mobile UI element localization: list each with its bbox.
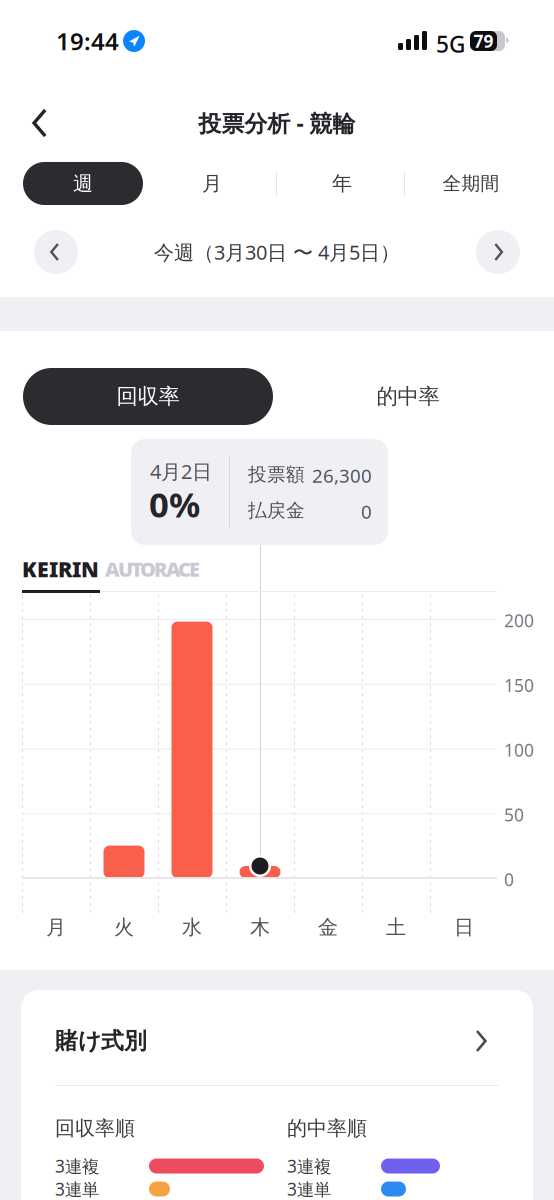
staticText: 週 bbox=[73, 171, 93, 196]
staticText: 0% bbox=[149, 481, 200, 527]
staticText: 79 bbox=[473, 29, 493, 52]
staticText: 賭け式別 bbox=[55, 1027, 147, 1055]
staticText: 回収率順 bbox=[55, 1116, 135, 1141]
staticText: 200 bbox=[504, 609, 534, 632]
button[interactable]: Back bbox=[16, 99, 64, 147]
staticText: 0 bbox=[361, 499, 372, 524]
staticText: 100 bbox=[504, 738, 534, 761]
staticText: 3連単 bbox=[287, 1177, 331, 1200]
button[interactable]: 全期間 bbox=[423, 162, 519, 205]
button[interactable]: 回収率 bbox=[23, 368, 273, 425]
staticText: 19:44 bbox=[56, 25, 119, 57]
button[interactable]: KEIRIN bbox=[22, 558, 102, 594]
staticText: 今週（3月30日 〜 4月5日） bbox=[154, 239, 400, 265]
staticText: 月 bbox=[46, 915, 66, 940]
staticText: 全期間 bbox=[442, 172, 499, 195]
staticText: 0 bbox=[504, 868, 514, 891]
staticText: 木 bbox=[250, 915, 270, 940]
button[interactable]: 賭け式別 bbox=[21, 990, 533, 1092]
staticText: 5G bbox=[436, 29, 465, 59]
button[interactable]: Previous week bbox=[34, 230, 78, 274]
button[interactable]: 的中率 bbox=[308, 368, 508, 425]
staticText: 投票額 bbox=[248, 463, 305, 486]
button[interactable]: 年 bbox=[306, 162, 378, 205]
staticText: KEIRIN bbox=[22, 555, 99, 583]
staticText: 26,300 bbox=[312, 463, 372, 488]
staticText: 水 bbox=[182, 915, 202, 940]
staticText: 的中率 bbox=[376, 383, 439, 410]
staticText: AUTORACE bbox=[105, 556, 200, 582]
staticText: 回収率 bbox=[116, 383, 179, 410]
staticText: 的中率順 bbox=[287, 1116, 367, 1141]
staticText: 3連複 bbox=[55, 1154, 99, 1177]
staticText: 4月2日 bbox=[150, 458, 212, 485]
button[interactable]: 月 bbox=[176, 162, 248, 205]
staticText: 金 bbox=[318, 915, 338, 940]
staticText: 投票分析 - 競輪 bbox=[198, 108, 355, 138]
button[interactable]: 週 bbox=[23, 162, 143, 205]
staticText: 年 bbox=[332, 171, 352, 196]
button[interactable]: AUTORACE bbox=[105, 558, 205, 580]
staticText: 日 bbox=[454, 915, 474, 940]
button[interactable]: Next week bbox=[476, 230, 520, 274]
staticText: 火 bbox=[114, 915, 134, 940]
staticText: 払戻金 bbox=[248, 499, 305, 522]
staticText: 月 bbox=[202, 171, 222, 196]
staticText: 3連複 bbox=[287, 1154, 331, 1177]
staticText: 50 bbox=[504, 803, 524, 826]
staticText: 150 bbox=[504, 674, 534, 697]
staticText: 土 bbox=[386, 915, 406, 940]
staticText: 3連単 bbox=[55, 1177, 99, 1200]
